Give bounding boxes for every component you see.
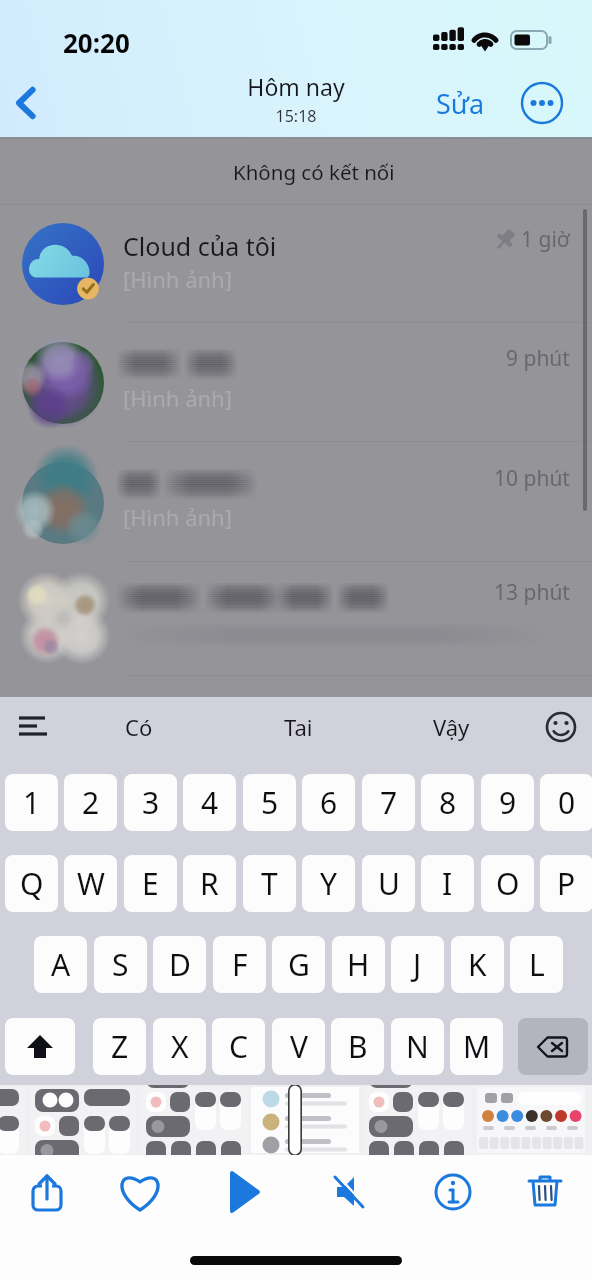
staticText: R xyxy=(200,863,219,904)
button[interactable]: 2 xyxy=(64,774,117,831)
staticText: U xyxy=(378,863,400,904)
staticText: P xyxy=(557,863,576,904)
button[interactable]: M xyxy=(450,1018,503,1075)
button[interactable]: D xyxy=(153,936,206,993)
staticText: I xyxy=(442,863,453,904)
staticText: H xyxy=(347,944,370,985)
button[interactable]: 7 xyxy=(362,774,415,831)
button[interactable]: N xyxy=(391,1018,444,1075)
staticText: 0 xyxy=(558,782,576,823)
button[interactable]: H xyxy=(332,936,385,993)
button[interactable]: Emoji xyxy=(541,707,581,747)
button[interactable]: G xyxy=(272,936,325,993)
button[interactable]: 3 xyxy=(124,774,177,831)
button[interactable]: Play xyxy=(214,1163,272,1221)
button[interactable]: T xyxy=(243,855,296,912)
button[interactable]: 0 xyxy=(540,774,592,831)
staticText: 5 xyxy=(261,782,279,823)
button[interactable] xyxy=(29,1085,137,1155)
button[interactable]: Favourite xyxy=(111,1163,169,1221)
staticText: A xyxy=(51,944,71,985)
staticText: L xyxy=(529,944,545,985)
staticText: F xyxy=(232,944,248,985)
staticText: E xyxy=(142,863,159,904)
staticText: 1 xyxy=(23,782,41,823)
button[interactable]: U xyxy=(362,855,415,912)
staticText: 3 xyxy=(142,782,160,823)
button[interactable]: J xyxy=(391,936,444,993)
button[interactable]: Q xyxy=(5,855,58,912)
button[interactable]: 8 xyxy=(421,774,474,831)
staticText: 2 xyxy=(82,782,100,823)
staticText: Cloud của tôi xyxy=(123,229,277,263)
button[interactable]: Info xyxy=(424,1163,482,1221)
button[interactable]: More options xyxy=(519,80,565,126)
button[interactable] xyxy=(477,1085,585,1155)
staticText: Không có kết nối xyxy=(233,158,395,186)
staticText: 15:18 xyxy=(0,105,592,127)
button[interactable]: 1 giờ xyxy=(0,205,592,323)
button[interactable]: 6 xyxy=(302,774,355,831)
staticText: [Hình ảnh] xyxy=(123,502,232,532)
button[interactable]: 13 phút xyxy=(0,558,592,676)
button[interactable]: L xyxy=(510,936,563,993)
button[interactable]: Mute xyxy=(320,1163,378,1221)
staticText: V xyxy=(290,1026,308,1067)
button[interactable]: S xyxy=(94,936,147,993)
button[interactable]: Y xyxy=(302,855,355,912)
button[interactable]: Share xyxy=(18,1163,76,1221)
button[interactable]: 5 xyxy=(243,774,296,831)
button[interactable]: V xyxy=(272,1018,325,1075)
button[interactable]: 9 phút xyxy=(0,324,592,442)
staticText: D xyxy=(169,944,191,985)
button[interactable] xyxy=(140,1085,248,1155)
staticText: Vậy xyxy=(433,712,470,742)
button[interactable]: Z xyxy=(93,1018,146,1075)
button[interactable]: 4 xyxy=(183,774,236,831)
staticText: 1 giờ xyxy=(521,225,570,254)
staticText: O xyxy=(496,863,520,904)
staticText: J xyxy=(413,944,422,985)
button[interactable]: Backspace xyxy=(518,1018,588,1075)
button[interactable]: A xyxy=(34,936,87,993)
button[interactable]: X xyxy=(153,1018,206,1075)
button[interactable]: Tai xyxy=(250,703,346,751)
button[interactable]: R xyxy=(183,855,236,912)
button[interactable] xyxy=(251,1085,359,1155)
staticText: N xyxy=(406,1026,429,1067)
button[interactable]: E xyxy=(124,855,177,912)
button[interactable]: 10 phút xyxy=(0,444,592,562)
staticText: Z xyxy=(111,1026,129,1067)
button[interactable]: Back xyxy=(0,76,54,130)
staticText: 9 xyxy=(499,782,517,823)
button[interactable]: C xyxy=(212,1018,265,1075)
button[interactable]: Delete xyxy=(516,1163,574,1221)
button[interactable]: O xyxy=(481,855,534,912)
staticText: Y xyxy=(320,863,337,904)
button[interactable]: P xyxy=(540,855,592,912)
staticText: Tai xyxy=(284,712,313,742)
staticText: [Hình ảnh] xyxy=(123,264,232,294)
staticText: 20:20 xyxy=(63,25,130,60)
staticText: 9 phút xyxy=(506,344,570,373)
button[interactable]: W xyxy=(64,855,117,912)
staticText: 8 xyxy=(439,782,457,823)
button[interactable] xyxy=(363,1085,471,1155)
button[interactable]: Shift xyxy=(5,1018,75,1075)
staticText: Q xyxy=(20,863,44,904)
button[interactable] xyxy=(0,1085,26,1155)
staticText: Sửa xyxy=(436,85,485,122)
staticText: 4 xyxy=(201,782,219,823)
staticText: C xyxy=(229,1026,248,1067)
button[interactable]: 1 xyxy=(5,774,58,831)
button[interactable]: B xyxy=(331,1018,384,1075)
button[interactable]: Keyboard menu xyxy=(12,706,52,746)
button[interactable]: K xyxy=(451,936,504,993)
button[interactable]: 9 xyxy=(481,774,534,831)
button[interactable]: I xyxy=(421,855,474,912)
button[interactable]: F xyxy=(213,936,266,993)
staticText: 7 xyxy=(380,782,398,823)
button[interactable]: Có xyxy=(91,703,187,751)
button[interactable]: Sửa xyxy=(427,78,494,128)
button[interactable]: Vậy xyxy=(403,703,499,751)
